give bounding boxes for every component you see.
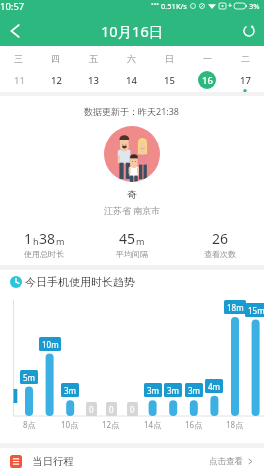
staticText: 0 bbox=[109, 404, 114, 415]
staticText: 3m bbox=[167, 385, 180, 396]
staticText: 38 bbox=[39, 229, 56, 248]
button[interactable]: 当日行程 bbox=[0, 448, 264, 474]
staticText: 今日手机使用时长趋势 bbox=[25, 275, 135, 289]
button[interactable]: 15m bbox=[245, 303, 264, 317]
button[interactable]: Back bbox=[0, 16, 30, 46]
staticText: 16 bbox=[202, 74, 213, 87]
staticText: 3m bbox=[64, 385, 77, 396]
staticText: 0 bbox=[89, 404, 94, 415]
staticText: 5m bbox=[23, 372, 36, 383]
staticText: 11 bbox=[14, 74, 25, 87]
staticText: 12点 bbox=[102, 419, 120, 430]
staticText: 18m bbox=[227, 302, 244, 313]
button[interactable]: 四 bbox=[37, 46, 74, 92]
staticText: h bbox=[33, 235, 39, 247]
staticText: 15 bbox=[164, 74, 175, 87]
button[interactable]: 1 bbox=[0, 229, 88, 259]
staticText: 江苏省 南京市 bbox=[104, 204, 161, 216]
staticText: 日 bbox=[165, 53, 174, 64]
staticText: 二 bbox=[241, 53, 250, 64]
staticText: ••• bbox=[151, 0, 159, 10]
staticText: 3m bbox=[147, 385, 160, 396]
button[interactable]: 3m bbox=[185, 383, 203, 397]
staticText: 12 bbox=[51, 74, 62, 87]
button[interactable]: 10m bbox=[39, 337, 61, 351]
staticText: 4m bbox=[208, 381, 221, 392]
staticText: 1 bbox=[24, 229, 33, 248]
staticText: 数据更新于：昨天21:38 bbox=[84, 105, 180, 117]
staticText: 15m bbox=[248, 305, 264, 316]
staticText: 五 bbox=[89, 53, 98, 64]
staticText: m bbox=[136, 235, 145, 247]
button[interactable]: 3m bbox=[61, 383, 79, 397]
button[interactable]: 0 bbox=[106, 402, 117, 416]
button[interactable]: 一 bbox=[188, 46, 226, 92]
staticText: 13 bbox=[88, 74, 99, 87]
staticText: 14点 bbox=[144, 419, 162, 430]
button[interactable]: 4m bbox=[205, 379, 223, 393]
staticText: 六 bbox=[127, 53, 136, 64]
staticText: m bbox=[56, 235, 65, 247]
staticText: 使用总时长 bbox=[24, 249, 64, 259]
button[interactable]: 日 bbox=[150, 46, 188, 92]
staticText: 三 bbox=[14, 53, 23, 64]
staticText: 查看次数 bbox=[204, 249, 236, 259]
staticText: 10月16日 bbox=[101, 21, 164, 41]
button[interactable]: 三 bbox=[0, 46, 37, 92]
staticText: 3% bbox=[249, 1, 260, 11]
staticText: 14 bbox=[126, 74, 137, 87]
staticText: 一 bbox=[203, 53, 212, 64]
staticText: 17 bbox=[240, 74, 251, 87]
staticText: 16点 bbox=[185, 419, 203, 430]
button[interactable]: 0 bbox=[127, 402, 138, 416]
button[interactable]: 26 bbox=[176, 229, 264, 259]
staticText: 3m bbox=[188, 385, 201, 396]
staticText: 0 bbox=[130, 404, 135, 415]
button[interactable]: 18m bbox=[224, 300, 246, 314]
staticText: 8点 bbox=[23, 419, 36, 430]
staticText: 四 bbox=[51, 53, 60, 64]
staticText: 10m bbox=[42, 339, 59, 350]
staticText: 18点 bbox=[226, 419, 244, 430]
button[interactable]: 5m bbox=[20, 370, 38, 384]
staticText: 0.51K/s bbox=[161, 1, 187, 11]
button[interactable] bbox=[104, 126, 160, 182]
staticText: 45 bbox=[119, 229, 136, 248]
staticText: 10点 bbox=[61, 419, 79, 430]
button[interactable]: 六 bbox=[112, 46, 150, 92]
button[interactable]: 3m bbox=[164, 383, 182, 397]
staticText: 10:57 bbox=[0, 0, 25, 13]
staticText: 平均间隔 bbox=[116, 249, 148, 259]
button[interactable]: 45 bbox=[88, 229, 176, 259]
button[interactable]: 0 bbox=[86, 402, 97, 416]
staticText: 奇 bbox=[127, 188, 137, 201]
button[interactable]: Refresh bbox=[234, 16, 264, 46]
button[interactable]: 五 bbox=[74, 46, 112, 92]
button[interactable]: 二 bbox=[226, 46, 264, 92]
staticText: 当日行程 bbox=[32, 455, 74, 468]
button[interactable]: 3m bbox=[144, 383, 162, 397]
staticText: + bbox=[228, 1, 233, 11]
staticText: 点击查看 bbox=[209, 456, 243, 467]
staticText: 26 bbox=[212, 229, 229, 248]
